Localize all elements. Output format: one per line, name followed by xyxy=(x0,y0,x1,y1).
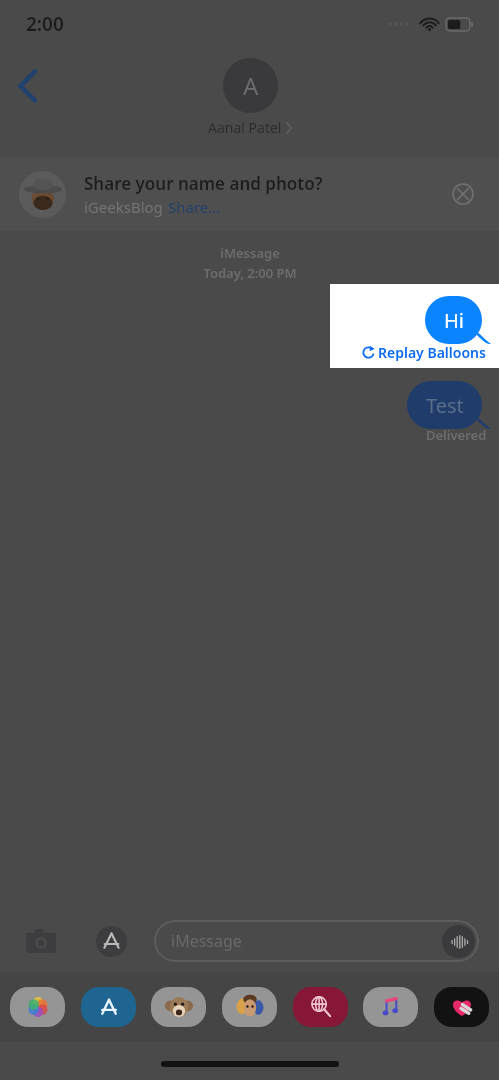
button[interactable]: Memoji xyxy=(151,987,206,1027)
staticText: Hi xyxy=(444,307,464,334)
button[interactable]: A xyxy=(208,58,292,137)
button[interactable]: Share… xyxy=(168,197,221,217)
staticText: iMessage xyxy=(171,930,242,952)
staticText: iMessage xyxy=(220,244,280,262)
staticText: Share your name and photo? xyxy=(84,172,323,195)
staticText: iGeeksBlog xyxy=(84,197,163,217)
staticText: A xyxy=(243,69,259,102)
button[interactable]: Music xyxy=(363,987,418,1027)
button[interactable]: Camera xyxy=(20,920,62,962)
staticText: Delivered xyxy=(426,426,487,444)
button[interactable]: Images xyxy=(293,987,348,1027)
button[interactable]: Apps xyxy=(90,920,132,962)
staticText: Today, 2:00 PM xyxy=(203,264,297,282)
button[interactable]: Replay Balloons xyxy=(362,343,486,362)
staticText: Aanal Patel xyxy=(208,118,282,137)
button[interactable]: Memoji Stickers xyxy=(222,987,277,1027)
button[interactable]: Digital Touch xyxy=(434,987,489,1027)
button[interactable]: Back xyxy=(2,60,54,112)
button[interactable]: iMessage xyxy=(154,920,479,962)
staticText: Replay Balloons xyxy=(378,343,486,362)
staticText: Test xyxy=(426,392,464,419)
button[interactable]: Photos xyxy=(10,987,65,1027)
button[interactable]: App Store xyxy=(81,987,136,1027)
staticText: Hi xyxy=(444,307,464,334)
staticText: ↺ Replay Balloons xyxy=(363,348,478,366)
button[interactable]: Audio message xyxy=(442,925,475,958)
button[interactable]: Hi xyxy=(425,296,491,344)
staticText: 2:00 xyxy=(26,11,64,37)
button[interactable]: Hi xyxy=(425,296,491,344)
button[interactable]: Dismiss xyxy=(446,177,480,211)
button[interactable]: Test xyxy=(407,381,491,429)
button[interactable]: Share your name and photo? xyxy=(0,157,499,231)
